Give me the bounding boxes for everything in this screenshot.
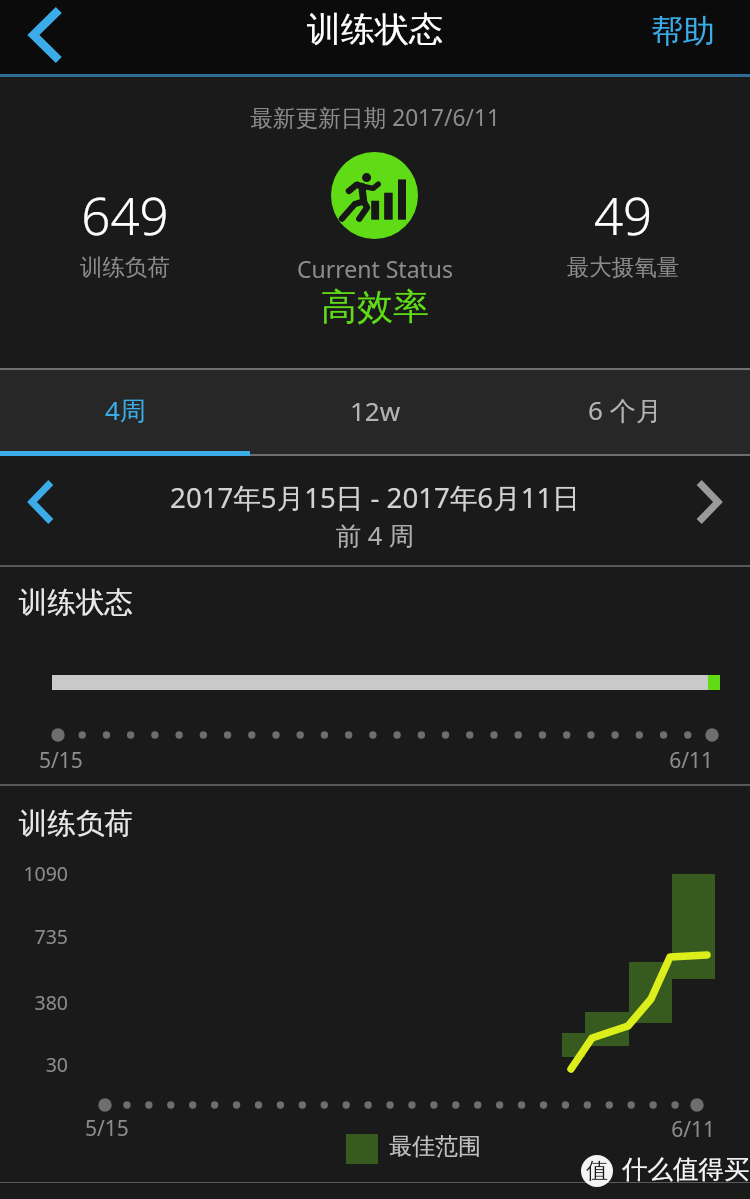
staticText: 最大摄氧量	[248, 253, 750, 281]
staticText: 380	[0, 989, 68, 1016]
staticText: 高效率	[0, 284, 750, 329]
staticText: 1090	[0, 860, 68, 887]
staticText: 训练状态	[19, 585, 133, 621]
staticText: 30	[0, 1051, 68, 1078]
button[interactable]: 12w	[250, 368, 500, 456]
staticText: 649	[0, 180, 500, 249]
staticText: 什么值得买	[622, 1153, 750, 1185]
button[interactable]: 6 个月	[500, 368, 750, 456]
button[interactable]: Previous period	[0, 456, 80, 567]
staticText: 49	[248, 180, 750, 249]
staticText: 12w	[350, 393, 401, 428]
staticText: 训练负荷	[0, 253, 500, 281]
staticText: 6 个月	[588, 392, 662, 428]
staticText: 训练状态	[307, 8, 443, 51]
staticText: Current Status	[0, 253, 750, 284]
staticText: 最新更新日期 2017/6/11	[0, 102, 750, 133]
staticText: 4周	[105, 392, 146, 428]
button[interactable]: Back	[0, 0, 88, 77]
staticText: 6/11	[513, 746, 713, 775]
button[interactable]: Training status	[331, 152, 418, 239]
staticText: 735	[0, 923, 68, 950]
staticText: 帮助	[651, 11, 715, 51]
staticText: 6/11	[515, 1115, 715, 1144]
staticText: 训练负荷	[19, 806, 133, 842]
staticText: 5/15	[85, 1114, 129, 1143]
staticText: 前 4 周	[0, 518, 750, 553]
button[interactable]: Next period	[670, 456, 750, 567]
button[interactable]: 帮助	[651, 0, 750, 77]
staticText: 值	[586, 1157, 608, 1185]
staticText: 5/15	[39, 746, 83, 775]
staticText: 最佳范围	[389, 1132, 481, 1161]
staticText: 2017年5月15日 - 2017年6月11日	[0, 478, 750, 516]
button[interactable]: 4周	[0, 368, 250, 456]
